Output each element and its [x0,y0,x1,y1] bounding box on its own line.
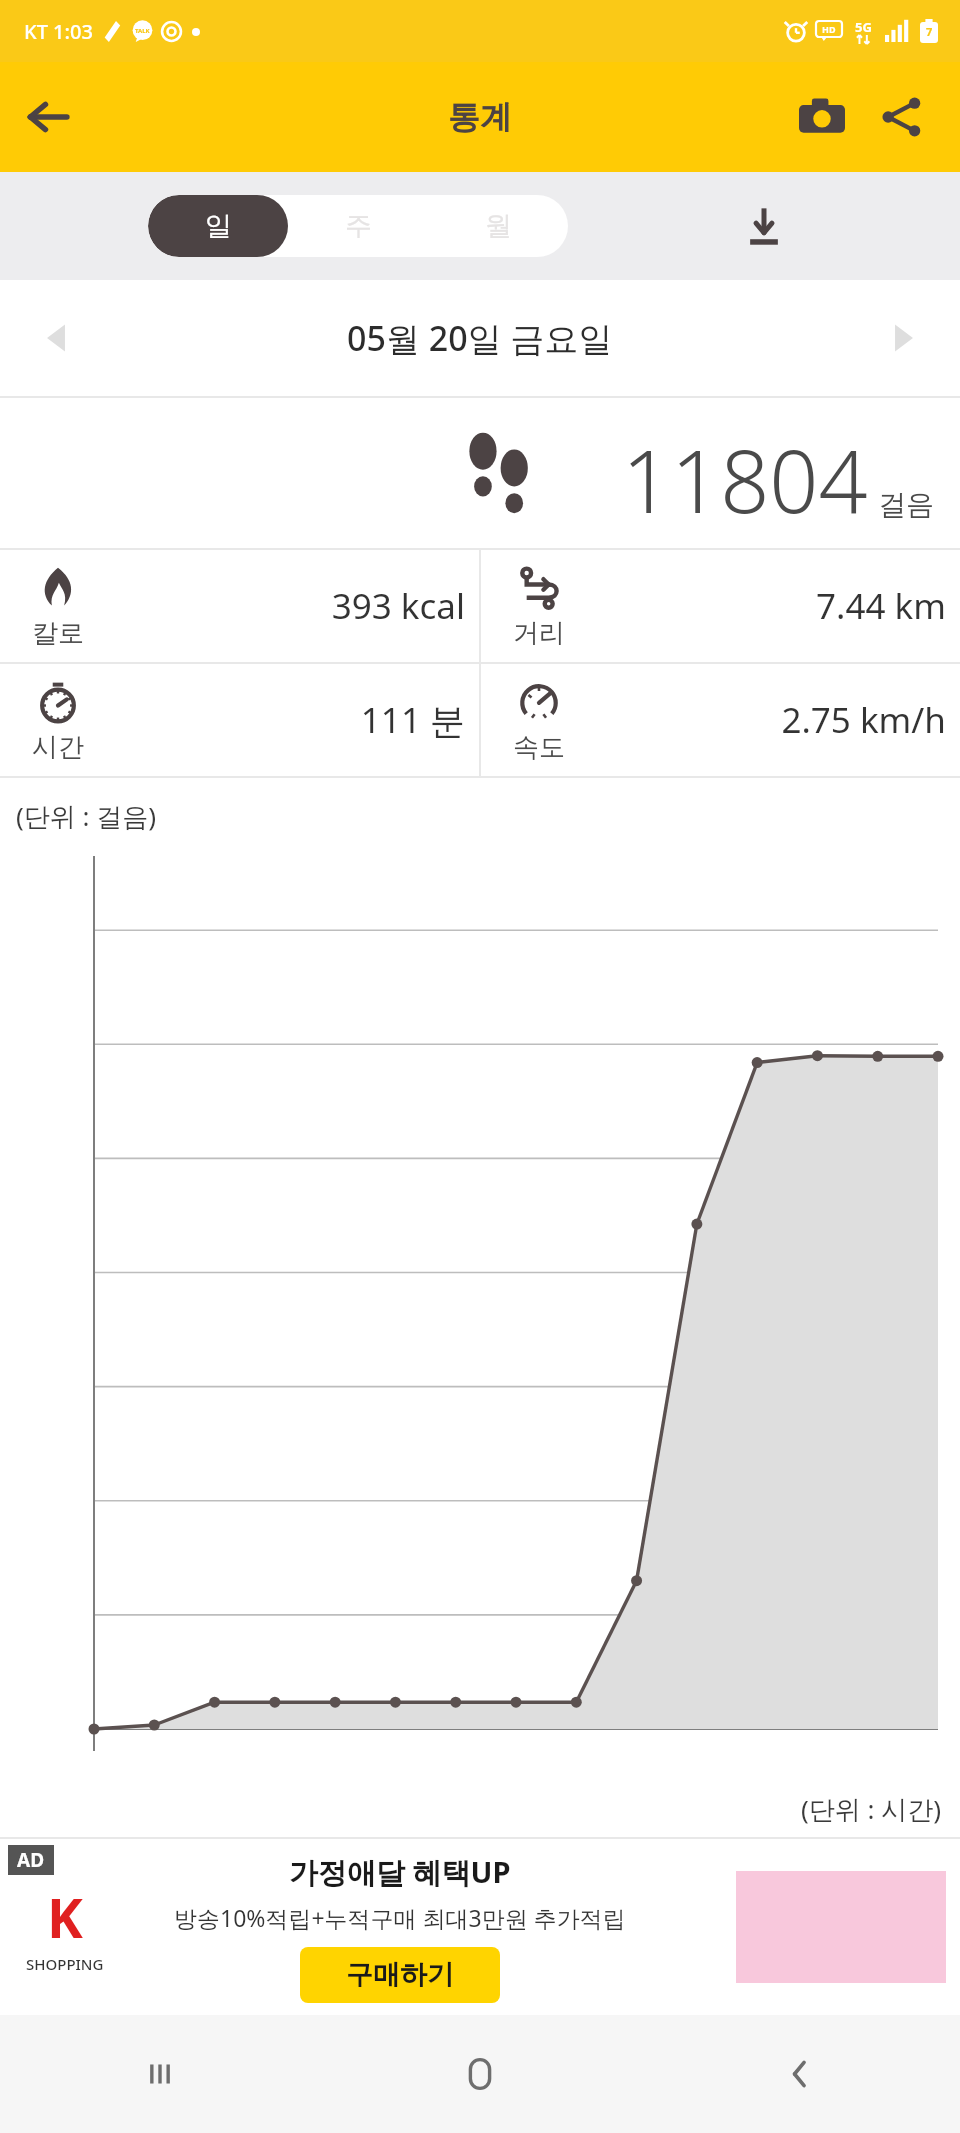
staticText: 5G [855,18,872,36]
staticText: 구매하기 [346,1958,454,1992]
button[interactable]: 속도 [481,664,960,776]
staticText: 11804 [622,421,868,538]
staticText: 111 분 [96,696,465,744]
button[interactable]: Back [640,2015,960,2133]
staticText: 거리 [513,617,565,650]
staticText: 주 [345,209,372,243]
staticText: 속도 [513,731,565,764]
staticText: 7.44 km [577,582,946,630]
button[interactable]: 시간 [0,664,479,776]
button[interactable]: Next day [848,282,960,394]
staticText: 일 [205,209,232,243]
staticText: 시간 [32,731,84,764]
button[interactable]: Camera [782,77,862,157]
staticText: 05월 20일 금요일 [347,315,613,361]
staticText: KT 1:03 [24,18,93,45]
button[interactable]: Share [862,77,942,157]
staticText: K [47,1880,83,1954]
staticText: (단위 : 걸음) [16,798,157,834]
staticText: 칼로 [32,617,84,650]
button[interactable]: 거리 [481,550,960,662]
button[interactable]: Back [0,69,96,165]
button[interactable]: Download [722,184,806,268]
button[interactable]: Previous day [0,282,112,394]
staticText: 2.75 km/h [577,696,946,744]
staticText: 통계 [448,97,512,137]
button[interactable]: 일 [148,195,288,257]
button[interactable]: Home [320,2015,640,2133]
button[interactable]: 주 [288,195,428,257]
button[interactable]: 월 [428,195,568,257]
staticText: 걸음 [878,487,934,522]
staticText: HD [822,23,836,35]
staticText: SHOPPING [26,1954,104,1974]
staticText: 방송10%적립+누적구매 최대3만원 추가적립 [174,1902,626,1933]
button[interactable]: 구매하기 [300,1947,500,2003]
staticText: TALK [135,27,150,35]
staticText: 7 [926,24,933,39]
staticText: AD [17,1847,45,1873]
staticText: 가정애달 혜택UP [289,1852,511,1892]
staticText: 393 kcal [96,582,465,630]
button[interactable]: Recents [0,2015,320,2133]
staticText: 월 [485,209,512,243]
button[interactable]: 칼로 [0,550,479,662]
staticText: (단위 : 시간) [801,1791,942,1827]
